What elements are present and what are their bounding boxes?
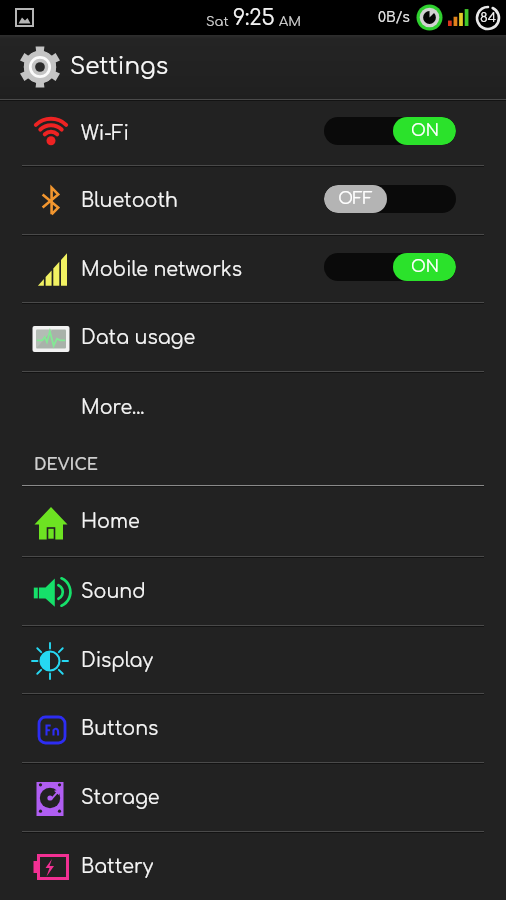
button[interactable]: Bluetooth <box>0 167 506 234</box>
button[interactable]: Home <box>0 487 506 556</box>
button[interactable]: Switch on <box>324 253 456 281</box>
button[interactable]: Switch off <box>324 185 456 213</box>
staticText: AM <box>279 15 301 29</box>
button[interactable]: Sound <box>0 558 506 625</box>
staticText: Wi-Fi <box>81 123 130 144</box>
button[interactable]: More... <box>0 373 506 442</box>
staticText: ON <box>411 258 439 276</box>
staticText: Settings <box>70 54 169 80</box>
staticText: Bluetooth <box>81 190 178 211</box>
button[interactable]: Display <box>0 627 506 693</box>
staticText: 84 <box>480 11 497 25</box>
button[interactable]: Mobile networks <box>0 236 506 302</box>
staticText: Mobile networks <box>81 259 242 280</box>
staticText: 9:25 <box>233 6 275 29</box>
staticText: Home <box>81 511 140 532</box>
button[interactable]: Battery <box>0 833 506 900</box>
button[interactable]: Storage <box>0 764 506 831</box>
staticText: Battery <box>81 856 154 877</box>
button[interactable]: Data usage <box>0 304 506 371</box>
staticText: Buttons <box>81 718 159 739</box>
staticText: Sound <box>81 581 146 602</box>
button[interactable]: Buttons <box>0 695 506 762</box>
staticText: OFF <box>338 190 373 208</box>
staticText: Sat <box>206 15 229 29</box>
staticText: Display <box>81 650 153 671</box>
button[interactable]: Wi-Fi <box>0 101 506 165</box>
staticText: Storage <box>81 787 160 808</box>
staticText: 0B/s <box>378 10 410 26</box>
staticText: More... <box>81 397 145 418</box>
staticText: DEVICE <box>34 456 99 474</box>
button[interactable]: Switch on <box>324 117 456 145</box>
staticText: Data usage <box>81 327 196 348</box>
button[interactable]: Settings <box>0 35 506 99</box>
staticText: ON <box>411 122 439 140</box>
